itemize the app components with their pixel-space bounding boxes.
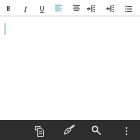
button[interactable]: Draw bbox=[60, 121, 78, 139]
button[interactable]: More options bbox=[117, 122, 135, 140]
button[interactable]: Align left bbox=[50, 1, 66, 15]
button[interactable]: Increase indent bbox=[83, 1, 99, 15]
button[interactable]: Bold bbox=[0, 1, 16, 15]
button[interactable]: Italic bbox=[17, 2, 33, 16]
button[interactable]: Search bbox=[87, 121, 105, 139]
button[interactable]: Bulleted list bbox=[120, 2, 136, 16]
button[interactable]: Underline bbox=[34, 2, 50, 16]
button[interactable]: Align center bbox=[68, 1, 84, 15]
button[interactable]: Decrease indent bbox=[102, 1, 118, 15]
button[interactable]: Paste bbox=[30, 122, 48, 140]
